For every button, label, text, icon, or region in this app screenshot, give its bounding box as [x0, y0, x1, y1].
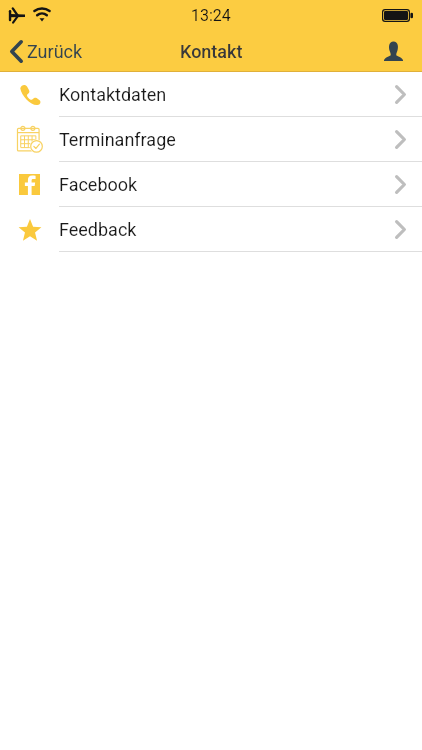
button[interactable]: Zurück — [0, 30, 106, 72]
staticText: Facebook — [59, 174, 138, 195]
staticText: Kontaktdaten — [59, 84, 167, 105]
staticText: Feedback — [59, 219, 137, 240]
button[interactable]: Terminanfrage — [0, 117, 422, 162]
button[interactable]: Facebook — [0, 162, 422, 207]
button[interactable]: Feedback — [0, 207, 422, 252]
staticText: Terminanfrage — [59, 129, 176, 150]
staticText: 13:24 — [191, 6, 231, 25]
staticText: Zurück — [27, 41, 83, 62]
button[interactable]: Kontaktdaten — [0, 72, 422, 117]
staticText: Kontakt — [180, 41, 243, 62]
button[interactable]: Kontakt — [372, 30, 422, 72]
